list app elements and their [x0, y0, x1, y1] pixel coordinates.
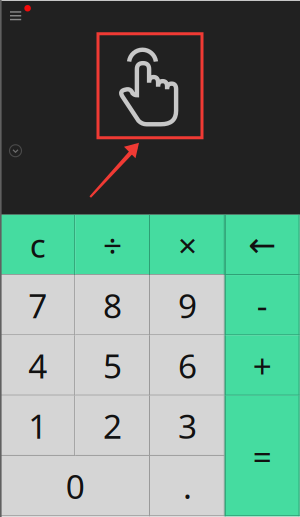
- staticText: =: [253, 434, 272, 478]
- staticText: ÷: [103, 223, 122, 267]
- button[interactable]: 0: [0, 456, 150, 516]
- button[interactable]: 5: [75, 335, 150, 396]
- button[interactable]: 3: [150, 396, 225, 456]
- button[interactable]: 1: [0, 396, 75, 456]
- button[interactable]: Menu: [0, 1, 30, 32]
- staticText: 3: [178, 404, 197, 448]
- button[interactable]: .: [150, 456, 225, 516]
- button[interactable]: ÷: [75, 215, 150, 275]
- button[interactable]: ←: [225, 215, 300, 275]
- staticText: ×: [178, 223, 197, 267]
- staticText: c: [30, 223, 46, 267]
- staticText: ←: [248, 226, 276, 264]
- button[interactable]: 7: [0, 275, 75, 335]
- staticText: 2: [103, 404, 122, 448]
- button[interactable]: 4: [0, 335, 75, 396]
- button[interactable]: =: [225, 396, 300, 516]
- button[interactable]: 2: [75, 396, 150, 456]
- staticText: 4: [28, 343, 47, 388]
- button[interactable]: +: [225, 335, 300, 396]
- staticText: .: [183, 464, 192, 508]
- staticText: 1: [28, 404, 47, 448]
- button[interactable]: Expand history: [1, 137, 29, 165]
- button[interactable]: 9: [150, 275, 225, 335]
- button[interactable]: c: [0, 215, 75, 275]
- button[interactable]: ×: [150, 215, 225, 275]
- staticText: 0: [66, 464, 85, 508]
- staticText: +: [253, 343, 272, 388]
- button[interactable]: 8: [75, 275, 150, 335]
- staticText: 9: [178, 283, 197, 327]
- staticText: 6: [178, 343, 197, 388]
- staticText: 5: [103, 343, 122, 388]
- staticText: 8: [103, 283, 122, 327]
- button[interactable]: -: [225, 275, 300, 335]
- staticText: -: [257, 283, 268, 327]
- button[interactable]: 6: [150, 335, 225, 396]
- staticText: 7: [28, 283, 47, 327]
